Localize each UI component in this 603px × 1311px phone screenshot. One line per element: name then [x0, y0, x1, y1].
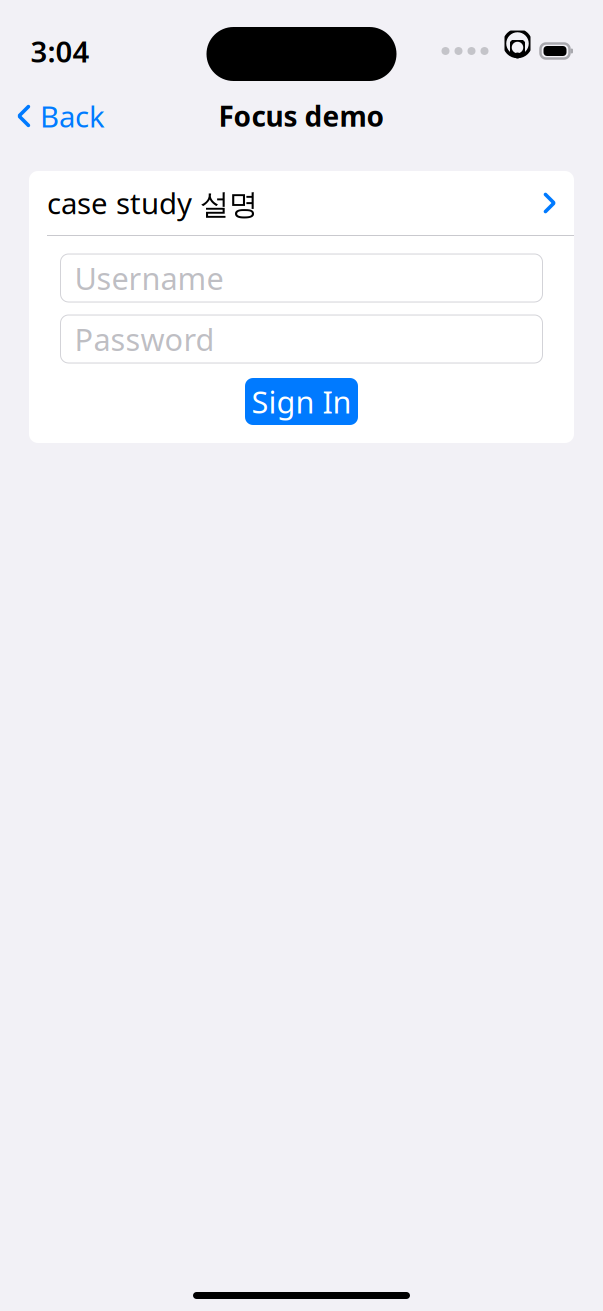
button[interactable]: Password [60, 315, 542, 363]
staticText: Username [74, 258, 223, 298]
staticText: case study 설명 [47, 183, 258, 222]
staticText: Back [40, 96, 105, 135]
button[interactable]: Username [60, 254, 542, 302]
staticText: Sign In [251, 381, 351, 422]
button[interactable]: case study 설명 [29, 171, 574, 235]
button[interactable]: Sign In [245, 378, 358, 425]
staticText: Password [74, 319, 214, 359]
staticText: 3:04 [30, 31, 89, 70]
button[interactable]: Back [3, 88, 119, 143]
staticText: Focus demo [218, 97, 384, 135]
